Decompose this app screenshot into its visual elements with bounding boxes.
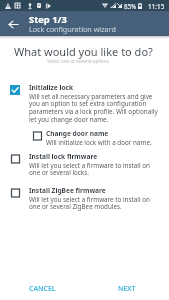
- staticText: 85%: [124, 2, 137, 10]
- button[interactable]: [0, 186, 169, 200]
- staticText: What would you like to do?: [14, 44, 153, 59]
- staticText: Will set all necessary parameters and gi…: [29, 92, 160, 124]
- staticText: Change door name: [46, 129, 109, 138]
- staticText: CANCEL: [29, 284, 56, 294]
- staticText: 11:15: [148, 2, 165, 11]
- button[interactable]: Back: [1, 12, 25, 36]
- staticText: Will let you select a firmware to instal…: [29, 195, 160, 211]
- staticText: Will let you select a firmware to instal…: [29, 161, 160, 177]
- staticText: Install ZigBee firmware: [29, 186, 106, 195]
- staticText: Will initialize lock with a door name.: [46, 138, 152, 147]
- staticText: Lock configuration wizard: [29, 24, 116, 34]
- button[interactable]: CANCEL: [23, 280, 62, 298]
- staticText: NEXT: [118, 284, 136, 294]
- button[interactable]: NEXT: [112, 280, 142, 298]
- staticText: Step 1/3: [29, 13, 67, 26]
- button[interactable]: [0, 129, 169, 149]
- staticText: Install lock firmware: [29, 152, 98, 161]
- staticText: Select one or several options.: [47, 58, 111, 64]
- button[interactable]: [0, 83, 169, 97]
- button[interactable]: [0, 152, 169, 166]
- staticText: Initialize lock: [29, 83, 74, 92]
